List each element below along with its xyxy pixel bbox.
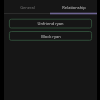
button[interactable]: General	[4, 0, 50, 14]
button[interactable]: Relationship	[50, 0, 97, 14]
button[interactable]: Unfriend ryan	[9, 19, 92, 28]
button[interactable]: Block ryan	[9, 32, 92, 41]
staticText: General	[20, 5, 35, 10]
staticText: Relationship	[62, 5, 86, 10]
staticText: Block ryan	[41, 34, 61, 39]
staticText: Unfriend ryan	[37, 21, 64, 26]
